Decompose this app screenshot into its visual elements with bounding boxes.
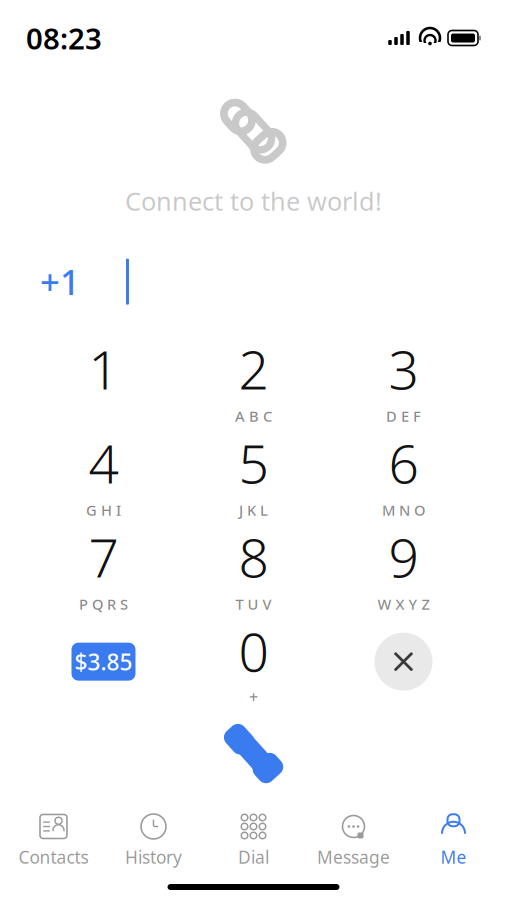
staticText: 5: [238, 427, 268, 498]
button[interactable]: 5: [198, 430, 308, 518]
staticText: T U V: [235, 594, 271, 614]
button[interactable]: 4: [48, 430, 158, 518]
staticText: +1: [40, 259, 80, 305]
staticText: 08:23: [26, 18, 102, 57]
button[interactable]: 8: [198, 524, 308, 612]
staticText: Contacts: [18, 845, 88, 868]
button[interactable]: Call: [203, 716, 303, 792]
button[interactable]: 7: [48, 524, 158, 612]
staticText: 7: [88, 521, 118, 592]
staticText: Connect to the world!: [125, 184, 382, 218]
staticText: Me: [440, 845, 466, 868]
button[interactable]: 6: [348, 430, 458, 518]
button[interactable]: 1: [48, 336, 158, 424]
staticText: 0: [238, 616, 268, 686]
staticText: Dial: [238, 845, 269, 868]
staticText: 8: [238, 521, 268, 592]
staticText: 9: [388, 521, 418, 592]
staticText: G H I: [86, 500, 121, 520]
staticText: 3: [388, 333, 418, 404]
button[interactable]: Contacts: [3, 812, 103, 870]
staticText: J K L: [239, 500, 268, 520]
button[interactable]: History: [103, 812, 203, 870]
button[interactable]: 0: [198, 618, 308, 706]
staticText: History: [125, 845, 182, 868]
staticText: 4: [88, 427, 118, 498]
staticText: 2: [238, 333, 268, 404]
staticText: 6: [388, 427, 418, 498]
staticText: P Q R S: [79, 594, 128, 614]
staticText: +: [249, 686, 258, 708]
staticText: $3.85: [74, 647, 132, 677]
staticText: 1: [88, 333, 118, 404]
button[interactable]: Message: [303, 812, 403, 870]
button[interactable]: 2: [198, 336, 308, 424]
button[interactable]: +1: [30, 259, 90, 305]
button[interactable]: 3: [348, 336, 458, 424]
staticText: Message: [317, 845, 390, 868]
staticText: A B C: [235, 406, 272, 426]
button[interactable]: Dial: [203, 812, 303, 870]
button[interactable]: Delete: [348, 618, 458, 706]
staticText: D E F: [386, 406, 421, 426]
button[interactable]: $3.85: [48, 618, 158, 706]
button[interactable]: Me: [403, 812, 503, 870]
staticText: M N O: [382, 500, 425, 520]
staticText: W X Y Z: [377, 594, 429, 614]
button[interactable]: 9: [348, 524, 458, 612]
